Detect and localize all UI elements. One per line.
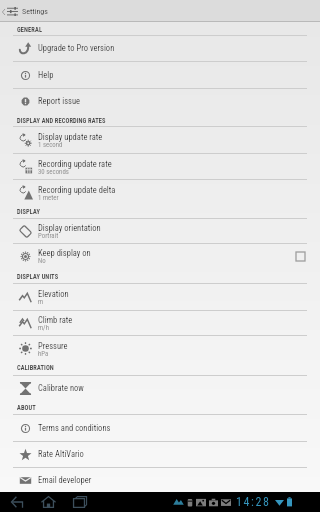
- staticText: DISPLAY AND RECORDING RATES: [17, 117, 106, 125]
- button[interactable]: Pressure: [0, 336, 320, 361]
- staticText: Display orientation: [38, 223, 101, 233]
- button[interactable]: Terms and conditions: [0, 415, 320, 441]
- staticText: Email developer: [38, 475, 92, 485]
- button[interactable]: Email developer: [0, 468, 320, 492]
- staticText: Terms and conditions: [38, 423, 111, 433]
- staticText: 30 seconds: [38, 168, 69, 176]
- staticText: Display update rate: [38, 132, 103, 142]
- button[interactable]: Calibrate now: [0, 376, 320, 400]
- staticText: 1 meter: [38, 194, 59, 202]
- staticText: hPa: [38, 350, 49, 358]
- button[interactable]: Upgrade to Pro version: [0, 36, 320, 61]
- button[interactable]: Rate AltiVario: [0, 442, 320, 467]
- button[interactable]: Keep display on: [0, 244, 320, 268]
- button[interactable]: Recording update rate: [0, 154, 320, 179]
- staticText: Elevation: [38, 289, 69, 299]
- button[interactable]: Home: [38, 492, 59, 512]
- staticText: Portrait: [38, 232, 59, 240]
- staticText: DISPLAY UNITS: [17, 273, 59, 281]
- staticText: Upgrade to Pro version: [38, 43, 115, 53]
- button[interactable]: Display orientation: [0, 219, 320, 243]
- button[interactable]: Recording update delta: [0, 180, 320, 205]
- button[interactable]: Elevation: [0, 284, 320, 310]
- staticText: Pressure: [38, 341, 68, 351]
- staticText: DISPLAY: [17, 208, 41, 216]
- staticText: Recording update delta: [38, 185, 116, 195]
- staticText: Climb rate: [38, 315, 73, 325]
- staticText: Help: [38, 70, 54, 80]
- button[interactable]: Display update rate: [0, 127, 320, 153]
- staticText: Rate AltiVario: [38, 449, 84, 459]
- button[interactable]: Climb rate: [0, 311, 320, 335]
- staticText: GENERAL: [17, 26, 43, 34]
- button[interactable]: Keep display on checkbox: [293, 249, 307, 263]
- button[interactable]: Help: [0, 62, 320, 88]
- staticText: CALIBRATION: [17, 364, 54, 372]
- staticText: Recording update rate: [38, 159, 112, 169]
- button[interactable]: Back: [6, 492, 27, 512]
- staticText: 1 second: [38, 141, 63, 149]
- staticText: m/h: [38, 324, 49, 332]
- staticText: Calibrate now: [38, 383, 84, 393]
- staticText: No: [38, 257, 46, 265]
- button[interactable]: Report issue: [0, 89, 320, 114]
- staticText: 14:28: [236, 495, 271, 509]
- staticText: Report issue: [38, 96, 81, 106]
- staticText: Settings: [22, 7, 48, 16]
- staticText: Keep display on: [38, 248, 91, 258]
- button[interactable]: Recent apps: [69, 492, 90, 512]
- button[interactable]: Navigate up to Settings: [0, 7, 320, 16]
- staticText: m: [38, 298, 44, 306]
- staticText: ABOUT: [17, 404, 36, 412]
